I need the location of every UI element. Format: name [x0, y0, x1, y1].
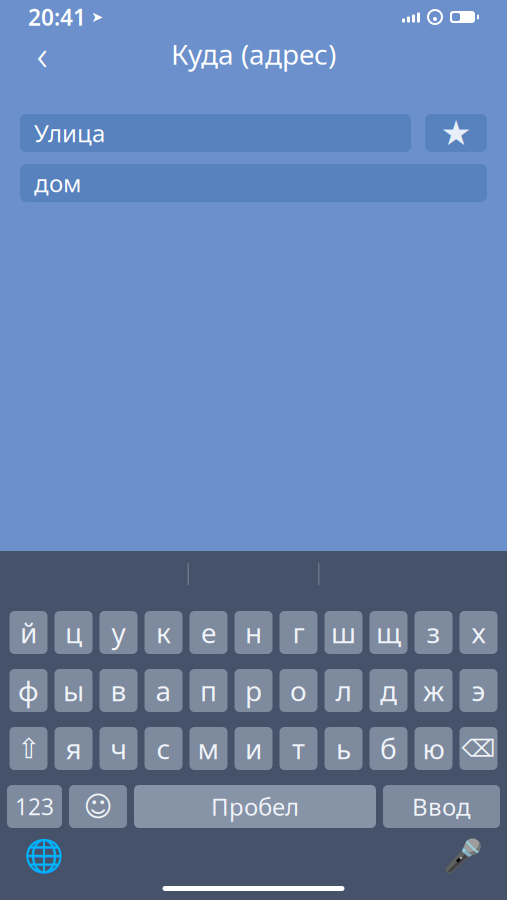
- button[interactable]: и: [234, 727, 272, 770]
- staticText: ⇧: [17, 733, 40, 764]
- button[interactable]: х: [459, 611, 497, 654]
- button[interactable]: п: [189, 669, 227, 712]
- staticText: ы: [63, 672, 84, 709]
- staticText: к: [156, 614, 171, 651]
- button[interactable]: с: [144, 727, 182, 770]
- button[interactable]: н: [234, 611, 272, 654]
- staticText: х: [471, 614, 485, 651]
- staticText: с: [156, 730, 170, 767]
- button[interactable]: ч: [99, 727, 137, 770]
- button[interactable]: ф: [9, 669, 47, 712]
- staticText: Куда (адрес): [171, 35, 336, 73]
- button[interactable]: Ввод: [383, 785, 500, 828]
- button[interactable]: я: [54, 727, 92, 770]
- staticText: ⌫: [461, 735, 495, 762]
- staticText: ★: [440, 113, 471, 153]
- staticText: б: [380, 730, 397, 767]
- staticText: п: [200, 672, 217, 709]
- button[interactable]: з: [414, 611, 452, 654]
- staticText: н: [245, 614, 262, 651]
- button[interactable]: ц: [54, 611, 92, 654]
- button[interactable]: Сменить язык: [22, 838, 66, 874]
- button[interactable]: у: [99, 611, 137, 654]
- staticText: дом: [34, 167, 81, 199]
- button[interactable]: ю: [414, 727, 452, 770]
- staticText: л: [335, 672, 351, 709]
- button[interactable]: ж: [414, 669, 452, 712]
- button[interactable]: дом: [20, 164, 487, 202]
- button[interactable]: е: [189, 611, 227, 654]
- staticText: Пробел: [211, 791, 299, 822]
- staticText: о: [290, 672, 307, 709]
- staticText: ш: [331, 614, 356, 651]
- staticText: щ: [376, 614, 401, 651]
- staticText: д: [380, 672, 397, 709]
- staticText: ‹: [36, 26, 47, 82]
- button[interactable]: ь: [324, 727, 362, 770]
- staticText: е: [201, 614, 216, 651]
- staticText: Ввод: [412, 791, 471, 822]
- button[interactable]: в: [99, 669, 137, 712]
- staticText: Улица: [34, 117, 105, 149]
- button[interactable]: д: [369, 669, 407, 712]
- button[interactable]: г: [279, 611, 317, 654]
- staticText: ☺: [83, 791, 112, 822]
- staticText: 🎤: [443, 838, 483, 874]
- staticText: в: [110, 672, 126, 709]
- staticText: ж: [423, 672, 444, 709]
- staticText: ь: [336, 730, 351, 767]
- staticText: и: [245, 730, 262, 767]
- button[interactable]: щ: [369, 611, 407, 654]
- button[interactable]: 123: [7, 785, 62, 828]
- button[interactable]: о: [279, 669, 317, 712]
- staticText: я: [65, 730, 81, 767]
- staticText: ю: [422, 730, 444, 767]
- button[interactable]: л: [324, 669, 362, 712]
- staticText: а: [155, 672, 171, 709]
- button[interactable]: ш: [324, 611, 362, 654]
- button[interactable]: ы: [54, 669, 92, 712]
- staticText: ц: [65, 614, 82, 651]
- button[interactable]: Избранное: [425, 114, 487, 152]
- staticText: ч: [110, 730, 126, 767]
- staticText: г: [292, 614, 304, 651]
- button[interactable]: й: [9, 611, 47, 654]
- button[interactable]: б: [369, 727, 407, 770]
- staticText: э: [471, 672, 485, 709]
- button[interactable]: Пробел: [134, 785, 376, 828]
- staticText: т: [292, 730, 305, 767]
- staticText: 🌐: [24, 838, 64, 874]
- staticText: у: [111, 614, 125, 651]
- staticText: м: [197, 730, 219, 767]
- staticText: й: [20, 614, 37, 651]
- button[interactable]: Диктовка: [441, 838, 485, 874]
- button[interactable]: р: [234, 669, 272, 712]
- button[interactable]: м: [189, 727, 227, 770]
- staticText: ➤: [91, 9, 103, 25]
- button[interactable]: Верхний регистр: [9, 727, 47, 770]
- button[interactable]: а: [144, 669, 182, 712]
- staticText: 123: [15, 791, 54, 821]
- button[interactable]: Эмодзи: [69, 785, 127, 828]
- staticText: з: [426, 614, 440, 651]
- button[interactable]: э: [459, 669, 497, 712]
- button[interactable]: Удалить: [459, 727, 497, 770]
- staticText: р: [245, 672, 262, 709]
- button[interactable]: к: [144, 611, 182, 654]
- button[interactable]: Улица: [20, 114, 411, 152]
- staticText: ф: [18, 672, 39, 709]
- button[interactable]: т: [279, 727, 317, 770]
- staticText: 20:41: [28, 2, 86, 32]
- button[interactable]: Назад: [20, 34, 64, 74]
